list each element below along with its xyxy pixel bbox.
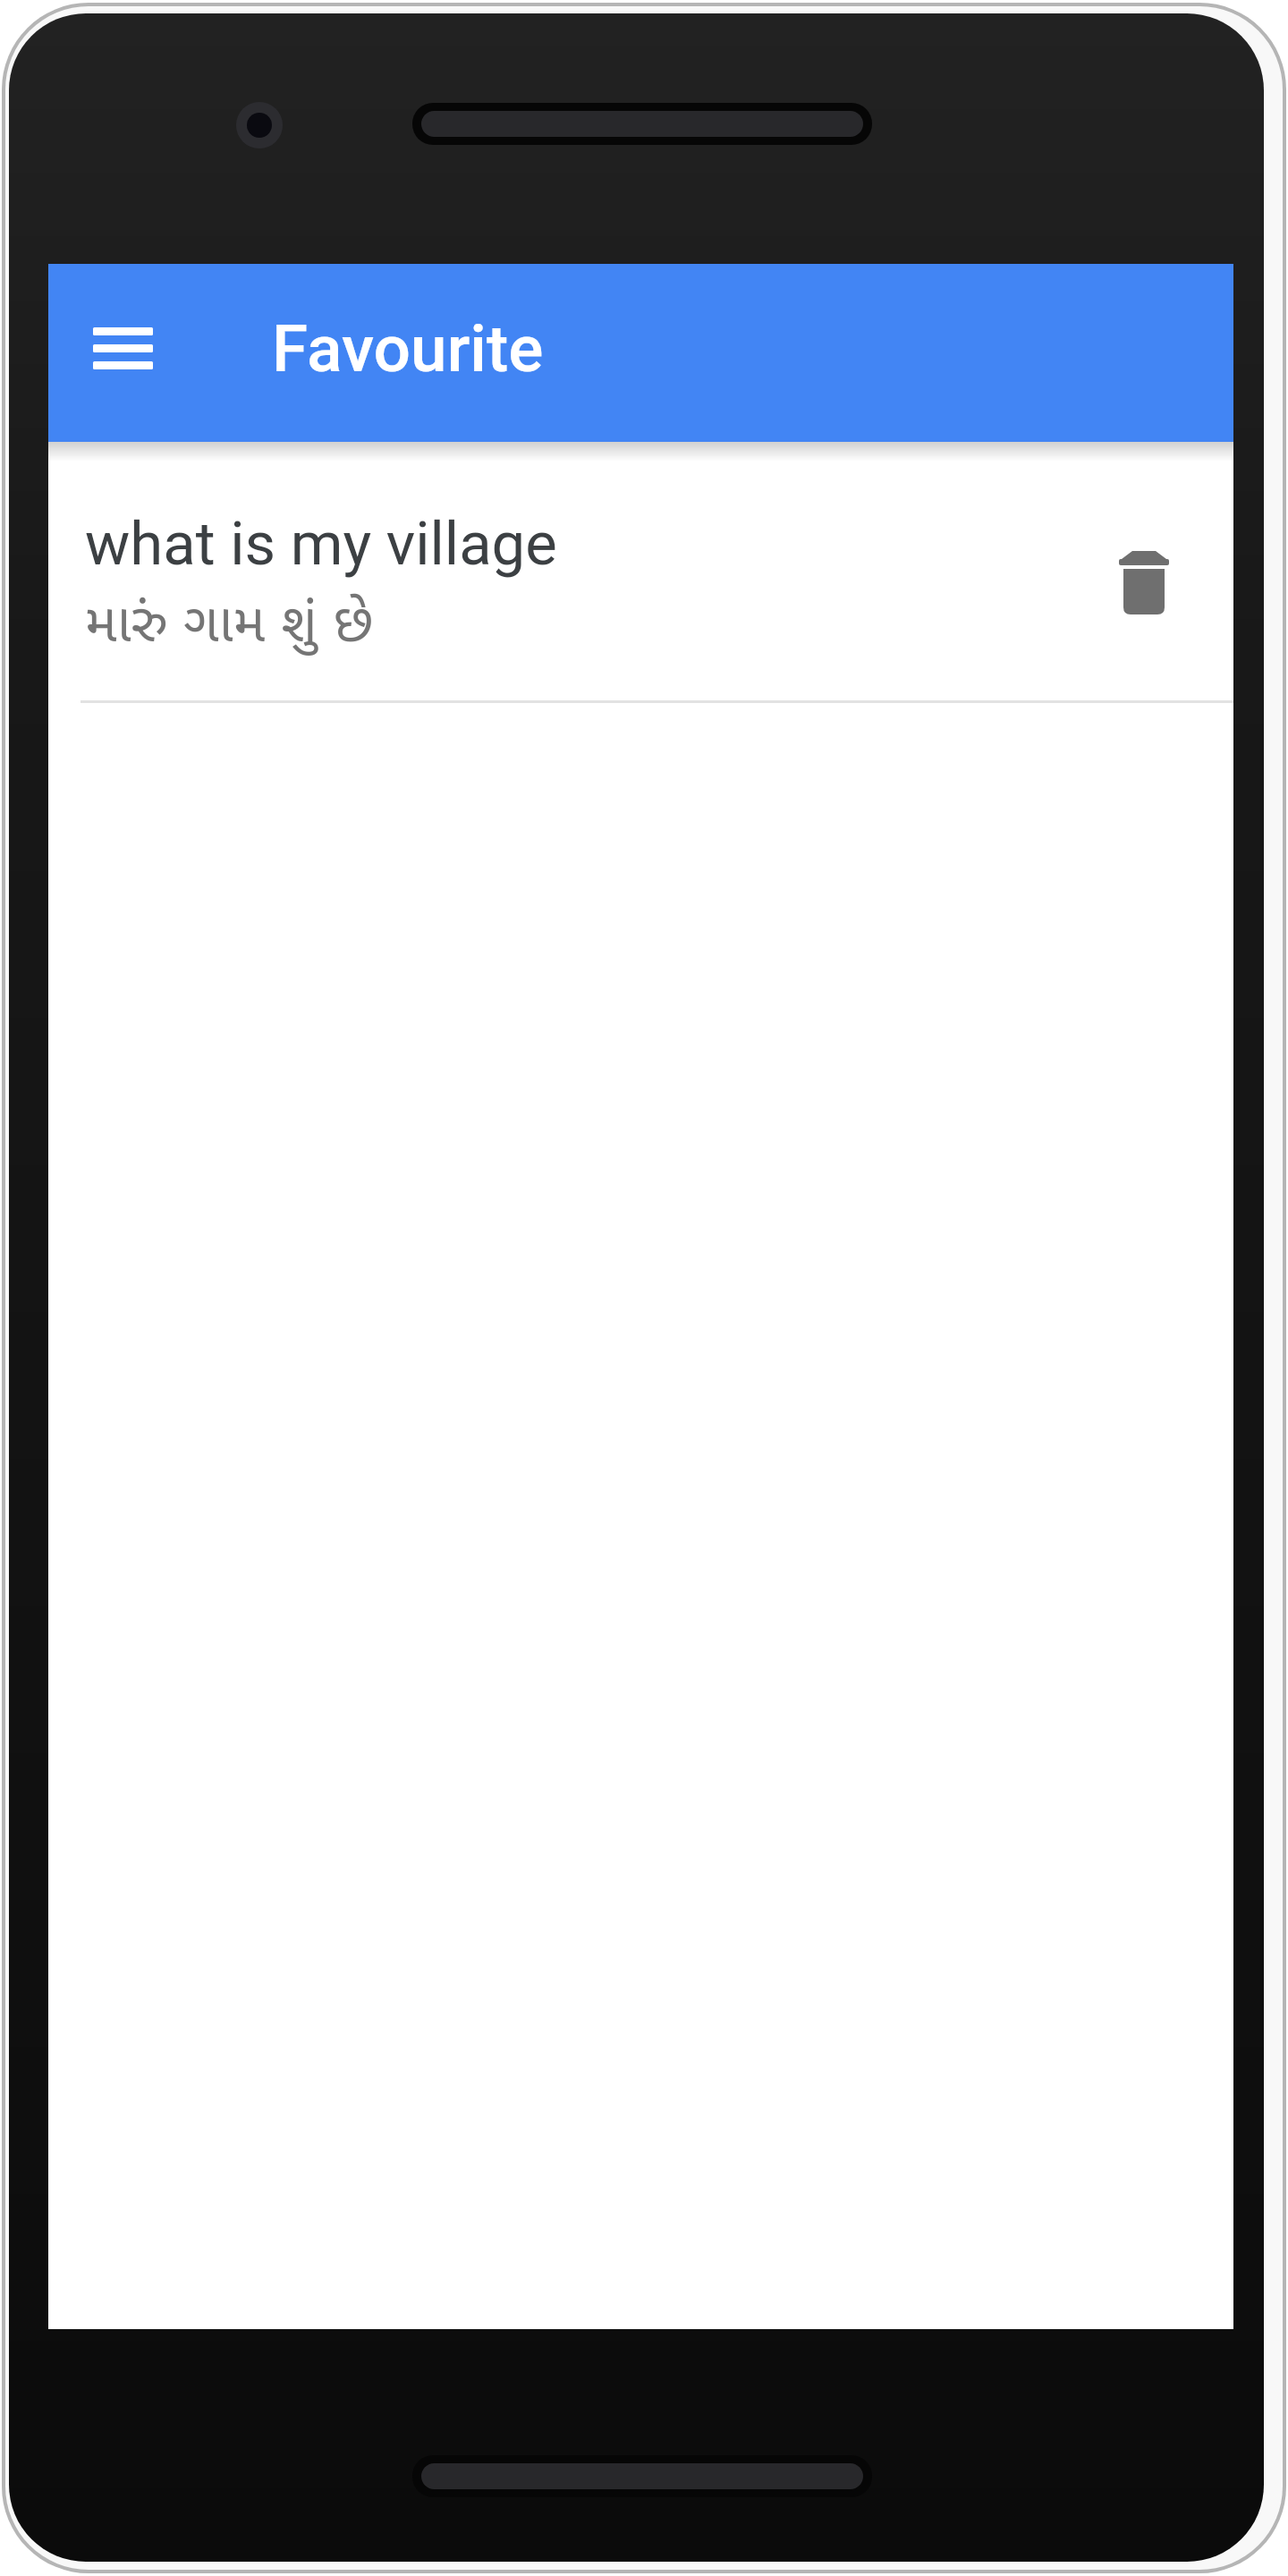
button[interactable]: what is my village bbox=[48, 462, 1233, 700]
staticText: મારું ગામ શું છે bbox=[85, 584, 374, 657]
staticText: what is my village bbox=[85, 509, 557, 580]
button[interactable] bbox=[1071, 523, 1178, 631]
button[interactable] bbox=[72, 306, 174, 391]
staticText: Favourite bbox=[272, 310, 544, 387]
